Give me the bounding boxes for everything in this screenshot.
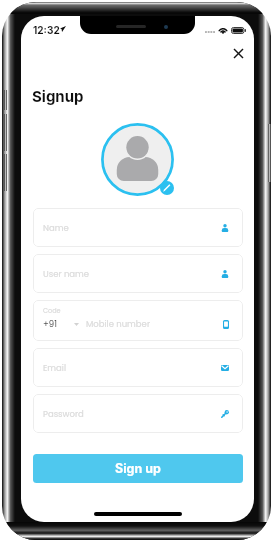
button[interactable]: Name [33,208,243,247]
staticText: +91 [43,318,57,330]
staticText: User name [43,268,90,280]
button[interactable]: Code [33,300,243,341]
staticText: 12:32 [33,24,60,36]
staticText: Name [43,222,69,234]
staticText: Mobile number [86,318,151,330]
staticText: Sign up [115,461,161,476]
button[interactable]: Close [227,42,250,65]
button[interactable]: Email [33,348,243,387]
button[interactable]: Edit photo [160,181,174,195]
staticText: Signup [32,87,84,105]
staticText: Email [43,362,67,374]
staticText: Code [43,306,61,315]
button[interactable]: Password [33,394,243,433]
button[interactable]: User name [33,254,243,293]
button[interactable]: Sign up [33,454,243,483]
staticText: Password [43,408,84,420]
